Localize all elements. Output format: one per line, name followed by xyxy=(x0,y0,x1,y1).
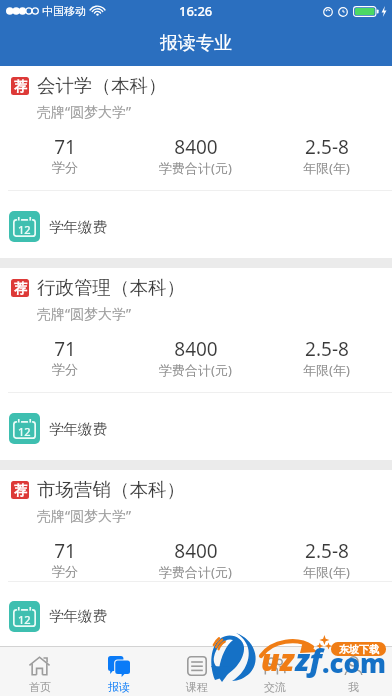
other: 课程 xyxy=(187,656,207,676)
other: 首页 xyxy=(29,656,50,676)
staticText: 学费合计(元) xyxy=(159,159,232,177)
staticText: 学年缴费 xyxy=(49,218,107,236)
staticText: 壳牌“圆梦大学” xyxy=(37,506,132,525)
staticText: 12 xyxy=(18,424,31,439)
staticText: 2.5-8 xyxy=(305,134,349,160)
other: 交流 xyxy=(264,656,286,676)
staticText: 我 xyxy=(348,680,359,694)
staticText: 会计学（本科） xyxy=(37,74,167,97)
button[interactable]: 荐 xyxy=(0,66,392,122)
staticText: 荐 xyxy=(14,78,27,94)
staticText: 报读专业 xyxy=(160,32,232,55)
staticText: 71 xyxy=(54,336,76,362)
staticText: 课程 xyxy=(186,680,208,694)
other: 报读 xyxy=(108,656,130,677)
button[interactable]: 12 xyxy=(0,582,392,646)
staticText: 学费合计(元) xyxy=(159,361,232,379)
staticText: 首页 xyxy=(29,680,51,694)
staticText: 年限(年) xyxy=(303,159,350,177)
other: 我 xyxy=(344,656,363,676)
staticText: 年限(年) xyxy=(303,563,350,581)
staticText: 8400 xyxy=(174,336,218,362)
staticText: 学年缴费 xyxy=(49,420,107,438)
staticText: zf xyxy=(295,639,322,680)
button[interactable]: 报读 xyxy=(79,646,158,696)
staticText: 学分 xyxy=(52,159,78,175)
staticText: 年限(年) xyxy=(303,361,350,379)
staticText: 16:26 xyxy=(179,2,213,20)
button[interactable]: 我 xyxy=(314,646,392,696)
staticText: 12 xyxy=(18,222,31,237)
button[interactable]: 交流 xyxy=(236,646,314,696)
staticText: 2.5-8 xyxy=(305,336,349,362)
staticText: 壳牌“圆梦大学” xyxy=(37,102,132,121)
staticText: 东坡下载 xyxy=(339,643,379,656)
button[interactable]: 首页 xyxy=(0,646,79,696)
button[interactable]: 课程 xyxy=(158,646,236,696)
button[interactable]: 12 xyxy=(0,191,392,258)
staticText: 71 xyxy=(54,134,76,160)
button[interactable]: 12 xyxy=(0,393,392,460)
button[interactable]: 荐 xyxy=(0,470,392,526)
staticText: 荐 xyxy=(14,280,27,296)
staticText: 学费合计(元) xyxy=(159,563,232,581)
staticText: 壳牌“圆梦大学” xyxy=(37,304,132,323)
staticText: 2.5-8 xyxy=(305,538,349,564)
staticText: 行政管理（本科） xyxy=(37,276,185,299)
staticText: uz xyxy=(261,639,295,680)
staticText: 12 xyxy=(18,612,31,627)
staticText: 学分 xyxy=(52,563,78,579)
staticText: 8400 xyxy=(174,134,218,160)
staticText: 荐 xyxy=(14,482,27,498)
staticText: 71 xyxy=(54,538,76,564)
staticText: 8400 xyxy=(174,538,218,564)
staticText: 交流 xyxy=(264,680,286,694)
staticText: .com xyxy=(322,645,387,680)
staticText: 市场营销（本科） xyxy=(37,478,185,501)
staticText: 报读 xyxy=(108,680,130,694)
staticText: 学年缴费 xyxy=(49,607,107,625)
button[interactable]: 荐 xyxy=(0,268,392,324)
staticText: 学分 xyxy=(52,361,78,377)
staticText: 中国移动 xyxy=(42,4,86,18)
